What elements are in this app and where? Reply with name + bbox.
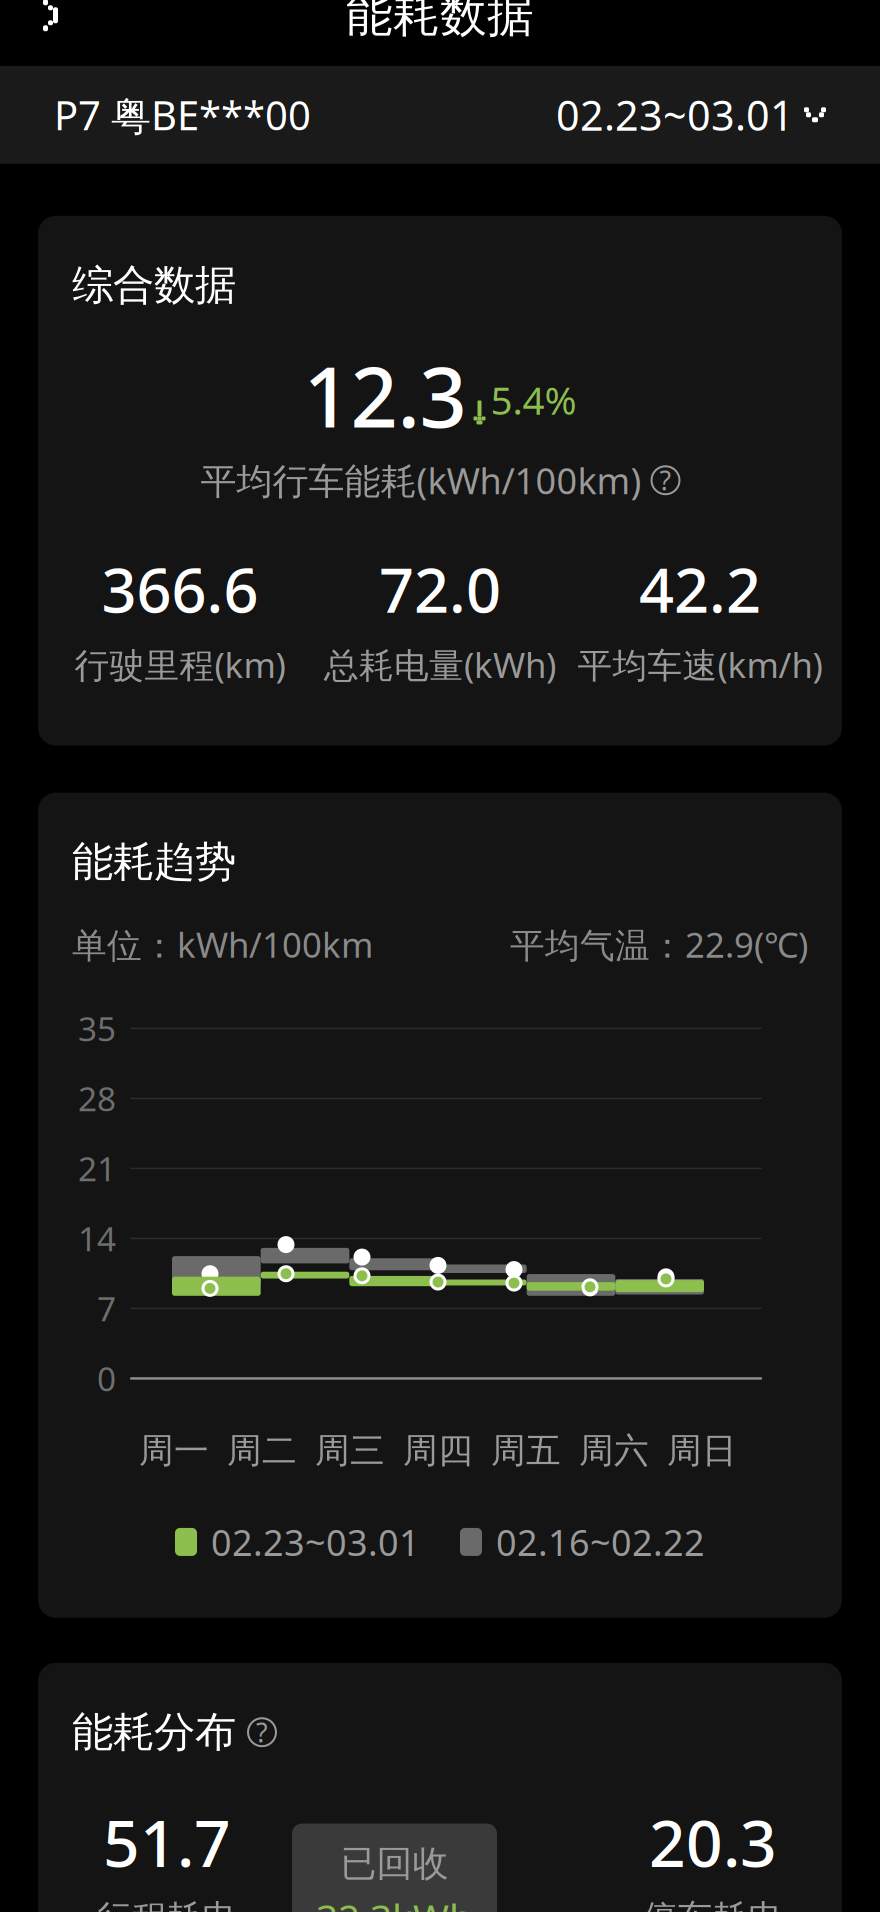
button[interactable]: 能耗说明 [651, 466, 679, 494]
staticText: 周四 [403, 1429, 473, 1472]
staticText: 单位：kWh/100km [72, 921, 373, 967]
staticText: 行程耗电(kWh) [97, 1897, 237, 1912]
staticText: 能耗分布 [72, 1707, 236, 1758]
staticText: 已回收 [340, 1842, 448, 1886]
button[interactable]: 能耗分布说明 [248, 1718, 276, 1746]
staticText: 35 [78, 1006, 116, 1051]
staticText: 32.3kWh [316, 1892, 473, 1912]
staticText: 周二 [227, 1429, 297, 1472]
staticText: 周五 [491, 1429, 561, 1472]
staticText: 42.2 [639, 548, 761, 630]
staticText: 能耗趋势 [72, 837, 236, 887]
staticText: ? [256, 1714, 268, 1750]
staticText: 平均车速(km/h) [577, 642, 822, 688]
staticText: 周日 [667, 1429, 737, 1472]
staticText: 02.16~02.22 [496, 1518, 705, 1566]
staticText: 能耗数据 [346, 0, 534, 44]
staticText: 0 [97, 1356, 116, 1401]
staticText: 平均气温：22.9(℃) [510, 921, 808, 967]
staticText: 366.6 [101, 548, 258, 630]
staticText: 行驶里程(km) [74, 642, 285, 688]
staticText: 7 [97, 1286, 116, 1331]
button[interactable]: 02.23~03.01 [556, 87, 826, 142]
staticText: 51.7 [103, 1800, 231, 1885]
staticText: 综合数据 [72, 260, 236, 311]
staticText: 28 [78, 1076, 116, 1121]
staticText: 21 [78, 1146, 116, 1191]
staticText: 02.23~03.01 [211, 1518, 420, 1566]
staticText: ? [659, 462, 671, 498]
staticText: 14 [78, 1216, 116, 1261]
staticText: 12.3 [303, 341, 466, 450]
staticText: 20.3 [649, 1800, 777, 1885]
staticText: 停车耗电(kWh) [643, 1897, 783, 1912]
staticText: 02.23~03.01 [556, 87, 794, 142]
staticText: 总耗电量(kWh) [324, 642, 556, 688]
staticText: 周三 [315, 1429, 385, 1472]
staticText: P7 粤BE***00 [54, 88, 311, 141]
staticText: 周一 [139, 1429, 209, 1472]
button[interactable]: 返回 [0, 0, 96, 63]
staticText: 平均行车能耗(kWh/100km) [200, 456, 641, 504]
staticText: 周六 [579, 1429, 649, 1472]
staticText: 5.4% [490, 374, 576, 425]
staticText: 72.0 [379, 548, 501, 630]
